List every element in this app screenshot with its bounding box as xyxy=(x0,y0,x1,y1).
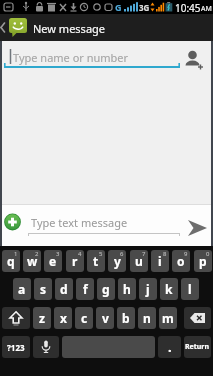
staticText: 4 xyxy=(78,250,82,258)
staticText: k xyxy=(165,281,173,297)
staticText: d xyxy=(60,281,68,297)
staticText: b xyxy=(122,310,130,326)
button[interactable]: b xyxy=(117,307,135,329)
button[interactable]: . xyxy=(158,336,181,358)
button[interactable]: s xyxy=(34,278,52,300)
staticText: h xyxy=(123,281,131,297)
button[interactable] xyxy=(0,204,213,246)
staticText: Return xyxy=(185,342,210,352)
staticText: o xyxy=(177,253,185,269)
staticText: Type name or number xyxy=(13,50,129,65)
button[interactable]: c xyxy=(75,307,93,329)
staticText: a xyxy=(18,281,26,297)
button[interactable]: h xyxy=(118,278,136,300)
staticText: s xyxy=(40,281,47,297)
staticText: 10:45 xyxy=(175,1,201,15)
button[interactable]: d xyxy=(55,278,73,300)
button[interactable]: z xyxy=(33,307,51,329)
button[interactable]: New message xyxy=(0,14,213,41)
button[interactable]: i xyxy=(151,250,169,272)
button[interactable]: x xyxy=(54,307,72,329)
button[interactable]: v xyxy=(96,307,114,329)
staticText: u xyxy=(135,253,143,269)
staticText: p xyxy=(199,253,207,269)
staticText: 6 xyxy=(120,250,124,258)
staticText: 1 xyxy=(14,250,18,258)
staticText: G xyxy=(115,1,122,13)
button[interactable]: w xyxy=(23,250,41,272)
button[interactable]: o xyxy=(172,250,190,272)
staticText: w xyxy=(27,253,38,269)
staticText: New message xyxy=(33,21,106,36)
staticText: 8 xyxy=(163,250,167,258)
staticText: z xyxy=(39,310,45,326)
staticText: c xyxy=(81,310,88,326)
button[interactable]: e xyxy=(44,250,62,272)
button[interactable]: u xyxy=(130,250,148,272)
staticText: t xyxy=(93,253,99,269)
button[interactable]: q xyxy=(2,250,20,272)
staticText: j xyxy=(146,281,150,297)
staticText: f xyxy=(83,281,88,297)
button[interactable]: Type name or number xyxy=(0,41,213,78)
button[interactable] xyxy=(33,336,59,358)
staticText: 3 xyxy=(56,250,60,258)
button[interactable]: p xyxy=(194,250,212,272)
staticText: Type text message xyxy=(31,215,128,230)
button[interactable]: m xyxy=(159,307,177,329)
staticText: 3G xyxy=(139,2,150,13)
button[interactable]: f xyxy=(76,278,94,300)
button[interactable]: ?123 xyxy=(2,336,30,358)
button[interactable] xyxy=(184,307,211,329)
button[interactable]: g xyxy=(97,278,115,300)
button[interactable]: a xyxy=(13,278,31,300)
staticText: n xyxy=(143,310,151,326)
button[interactable]: y xyxy=(108,250,126,272)
staticText: e xyxy=(49,253,57,269)
button[interactable]: Return xyxy=(184,336,211,358)
button[interactable]: k xyxy=(160,278,178,300)
staticText: AM xyxy=(201,4,212,14)
staticText: ?123 xyxy=(7,342,25,353)
staticText: 2 xyxy=(35,250,39,258)
button[interactable]: n xyxy=(138,307,156,329)
staticText: 0 xyxy=(206,250,210,258)
button[interactable]: l xyxy=(181,278,199,300)
staticText: x xyxy=(60,310,67,326)
button[interactable]: t xyxy=(87,250,105,272)
staticText: l xyxy=(188,281,192,297)
staticText: . xyxy=(168,338,172,356)
button[interactable]: j xyxy=(139,278,157,300)
staticText: g xyxy=(102,281,110,297)
staticText: m xyxy=(162,310,174,326)
button[interactable] xyxy=(2,307,30,329)
staticText: i xyxy=(158,253,162,269)
staticText: v xyxy=(102,310,109,326)
staticText: 5 xyxy=(99,250,103,258)
staticText: q xyxy=(7,253,15,269)
button[interactable]: r xyxy=(66,250,84,272)
staticText: r xyxy=(72,253,78,269)
staticText: 9 xyxy=(184,250,188,258)
staticText: y xyxy=(114,253,121,269)
staticText: 7 xyxy=(142,250,146,258)
